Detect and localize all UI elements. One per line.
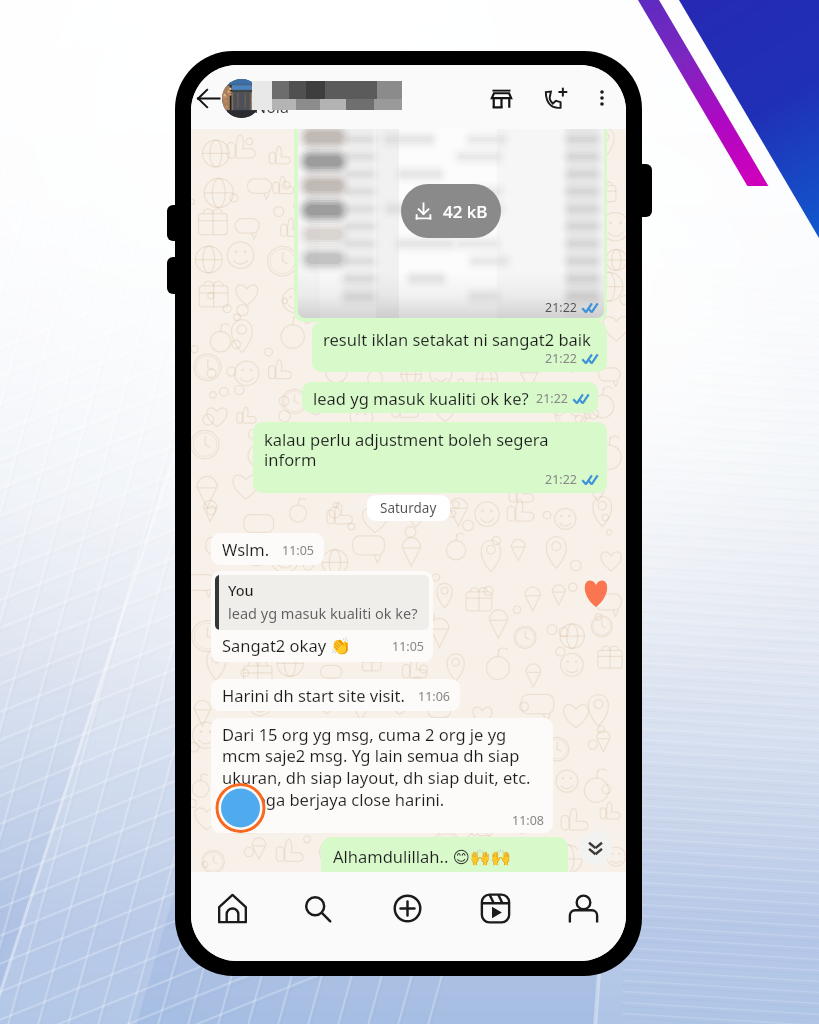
staticText: Nola bbox=[254, 96, 289, 118]
button[interactable]: Create bbox=[383, 884, 431, 932]
button[interactable]: Shop bbox=[482, 79, 520, 117]
staticText: Puspa Niaga PLT bbox=[254, 76, 381, 98]
button[interactable]: lead yg masuk kualiti ok ke? bbox=[302, 382, 598, 413]
button[interactable]: Photo attachment bbox=[294, 129, 607, 322]
button[interactable]: kalau perlu adjustment boleh segera info… bbox=[253, 422, 607, 493]
staticText: Saturday bbox=[380, 499, 437, 517]
button[interactable]: Scroll to bottom bbox=[578, 831, 612, 865]
button[interactable]: Harini dh start site visit. bbox=[211, 679, 460, 711]
staticText: lead yg masuk kualiti ok ke? bbox=[313, 387, 529, 409]
button[interactable]: You bbox=[211, 571, 433, 662]
button[interactable]: More options bbox=[583, 79, 621, 117]
staticText: You bbox=[228, 580, 254, 600]
button[interactable]: result iklan setakat ni sangat2 baik bbox=[312, 322, 607, 372]
button[interactable]: Alhamdulillah.. 😊🙌🙌 bbox=[321, 837, 568, 872]
staticText: Wslm. bbox=[222, 538, 270, 560]
button[interactable]: Search bbox=[293, 884, 341, 932]
staticText: 21:22 bbox=[545, 350, 577, 367]
staticText: lead yg masuk kualiti ok ke? bbox=[228, 603, 418, 623]
button[interactable]: Wslm. bbox=[211, 533, 324, 565]
staticText: 11:06 bbox=[418, 688, 450, 705]
staticText: 11:08 bbox=[512, 812, 544, 829]
staticText: Alhamdulillah.. 😊🙌🙌 bbox=[333, 845, 511, 867]
button[interactable]: Back bbox=[191, 80, 226, 116]
staticText: kalau perlu adjustment boleh segera info… bbox=[264, 428, 598, 471]
button[interactable]: Saturday bbox=[367, 495, 450, 521]
button[interactable]: Dari 15 org yg msg, cuma 2 org je yg mcm… bbox=[211, 718, 553, 833]
button[interactable]: Reels bbox=[471, 884, 519, 932]
button[interactable]: Add call bbox=[536, 79, 574, 117]
staticText: 11:05 bbox=[392, 638, 424, 655]
button[interactable]: Home bbox=[208, 884, 256, 932]
staticText: Harini dh start site visit. bbox=[222, 684, 406, 706]
staticText: 42 kB bbox=[443, 200, 488, 223]
staticText: result iklan setakat ni sangat2 baik bbox=[323, 328, 591, 350]
staticText: Dari 15 org yg msg, cuma 2 org je yg mcm… bbox=[222, 723, 531, 811]
button[interactable]: Pointer bbox=[215, 783, 266, 833]
staticText: 21:22 bbox=[545, 471, 577, 488]
staticText: 11:05 bbox=[282, 542, 314, 559]
staticText: 21:22 bbox=[536, 390, 568, 407]
button[interactable]: Download 42 kB bbox=[401, 184, 501, 238]
button[interactable]: Profile bbox=[559, 884, 607, 932]
staticText: 21:22 bbox=[545, 299, 577, 316]
button[interactable]: Profile photo bbox=[222, 79, 261, 118]
staticText: Sangat2 okay 👏 bbox=[222, 634, 351, 656]
